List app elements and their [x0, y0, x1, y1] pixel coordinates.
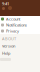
staticText: Privacy	[6, 28, 19, 34]
staticText: Version	[2, 43, 15, 49]
button[interactable]: Notifications	[0, 22, 40, 28]
staticText: 9:41	[2, 1, 9, 6]
staticText: Account	[6, 16, 20, 22]
button[interactable]: Account	[0, 16, 40, 22]
staticText: Help	[2, 51, 10, 56]
staticText: Notifications	[6, 22, 27, 28]
staticText: ABOUT	[2, 36, 16, 41]
button[interactable]: Privacy	[0, 28, 40, 34]
